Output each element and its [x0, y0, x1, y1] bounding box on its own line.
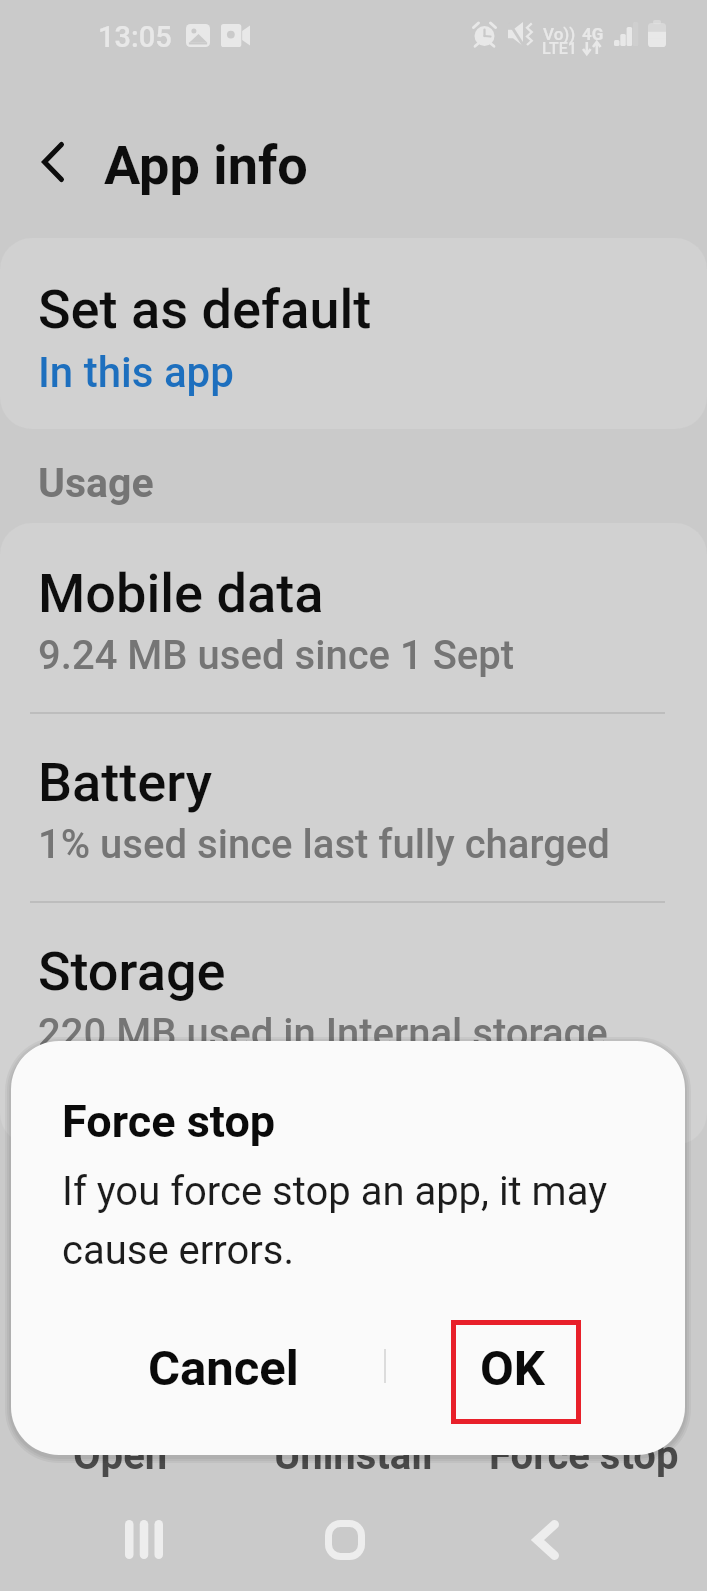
staticText: Force stop [62, 1095, 276, 1148]
staticText: 1% used since last fully charged [38, 821, 610, 868]
button[interactable]: Home [289, 1484, 400, 1591]
staticText: Uninstall [274, 1432, 433, 1479]
staticText: 4G [582, 24, 604, 44]
button[interactable]: Uninstall [256, 1420, 451, 1491]
button[interactable]: OK [389, 1313, 635, 1423]
staticText: Open [73, 1432, 168, 1479]
staticText: 13:05 [98, 20, 172, 54]
staticText: App info [104, 134, 308, 197]
staticText: 9.24 MB used since 1 Sept [38, 632, 515, 679]
staticText: LTE1 [542, 39, 577, 58]
staticText: Usage [38, 459, 154, 507]
button[interactable]: Recent apps [88, 1484, 199, 1591]
button[interactable]: Navigate up [18, 127, 88, 197]
button[interactable]: Open [55, 1420, 186, 1491]
button[interactable]: Cancel [86, 1313, 361, 1423]
staticText: Mobile data [38, 562, 324, 625]
button[interactable]: Battery [0, 714, 707, 901]
button[interactable]: Storage [0, 903, 707, 1090]
staticText: 220 MB used in Internal storage [38, 1010, 608, 1057]
button[interactable]: Force stop [471, 1420, 697, 1491]
staticText: Memory [38, 1129, 238, 1145]
staticText: Cancel [148, 1340, 299, 1397]
button[interactable]: Back [490, 1484, 601, 1591]
button[interactable]: Memory [0, 1092, 707, 1145]
staticText: In this app [38, 348, 234, 397]
staticText: Force stop [489, 1432, 679, 1479]
staticText: If you force stop an app, it may cause e… [62, 1168, 608, 1273]
staticText: OK [480, 1340, 545, 1397]
button[interactable]: Mobile data [0, 525, 707, 712]
staticText: Set as default [38, 278, 372, 341]
staticText: Vo)) [543, 24, 576, 44]
button[interactable]: Set as default [0, 238, 707, 429]
staticText: Storage [38, 940, 226, 1003]
staticText: Battery [38, 751, 213, 814]
